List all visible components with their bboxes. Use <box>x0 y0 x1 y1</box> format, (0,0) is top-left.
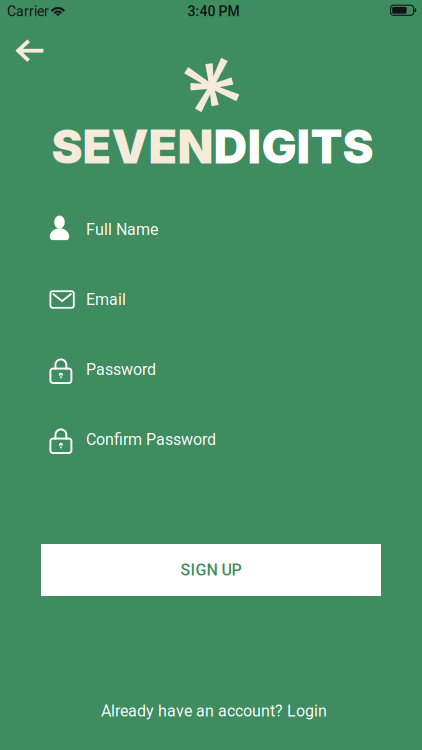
staticText: Email <box>86 290 126 309</box>
button[interactable]: Already have an account? Login <box>84 698 344 724</box>
staticText: SIGN UP <box>180 561 241 579</box>
button[interactable]: Full Name <box>41 205 381 253</box>
staticText: Confirm Password <box>86 430 216 449</box>
button[interactable]: Back <box>8 29 54 73</box>
button[interactable]: Email <box>41 275 381 323</box>
staticText: Carrier <box>7 3 49 20</box>
staticText: SEVEN <box>51 118 213 175</box>
staticText: 3:40 PM <box>187 3 239 20</box>
staticText: DIGITS <box>213 118 373 175</box>
staticText: Full Name <box>86 220 158 239</box>
button[interactable]: Password <box>41 345 381 393</box>
button[interactable]: Confirm Password <box>41 415 381 463</box>
staticText: Already have an account? Login <box>101 702 327 720</box>
staticText: Password <box>86 360 156 379</box>
button[interactable]: SIGN UP <box>41 544 381 596</box>
